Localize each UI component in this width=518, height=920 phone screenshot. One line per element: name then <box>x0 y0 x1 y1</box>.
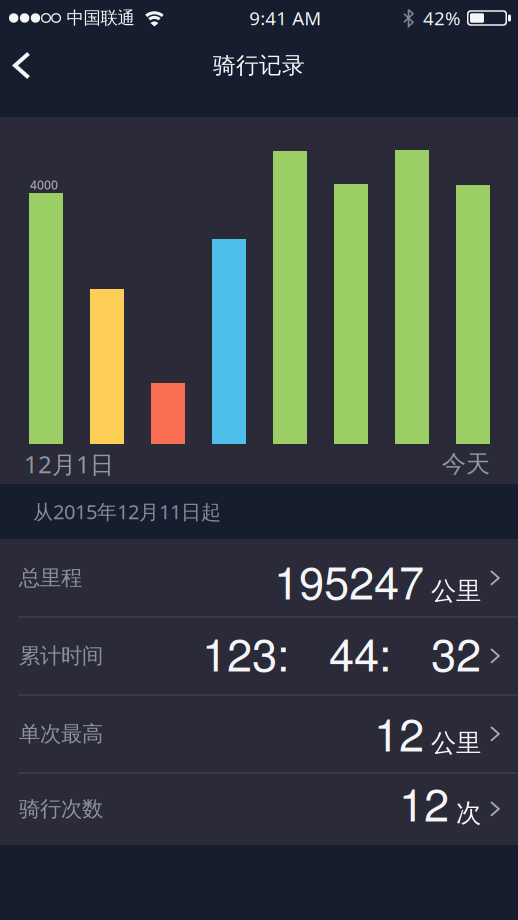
staticText: 今天 <box>442 449 490 479</box>
staticText: 42% <box>423 6 461 30</box>
staticText: 195247 <box>274 547 424 612</box>
button[interactable]: 总里程 <box>0 539 518 616</box>
staticText: 9:41 AM <box>249 6 321 30</box>
staticText: 12 <box>399 769 449 834</box>
staticText: 公里 <box>431 576 481 607</box>
button[interactable]: 累计时间 <box>0 617 518 694</box>
staticText: 累计时间 <box>19 643 103 669</box>
button[interactable]: 单次最高 <box>0 695 518 772</box>
staticText: 总里程 <box>19 565 82 591</box>
staticText: 公里 <box>431 728 481 759</box>
staticText: 从2015年12月11日起 <box>33 498 221 525</box>
staticText: 4000 <box>30 177 58 193</box>
button[interactable]: Back <box>0 43 49 87</box>
staticText: 骑行记录 <box>213 52 305 79</box>
staticText: 骑行次数 <box>19 796 103 822</box>
staticText: 次 <box>456 798 481 829</box>
staticText: 中国联通 <box>66 7 134 29</box>
button[interactable]: 骑行次数 <box>0 773 518 844</box>
staticText: 123: 44: 32 <box>202 619 481 684</box>
staticText: 单次最高 <box>19 721 103 747</box>
staticText: 12月1日 <box>24 448 114 480</box>
staticText: 12 <box>374 699 424 764</box>
